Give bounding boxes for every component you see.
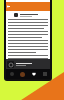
button[interactable]: Tab 0: [6, 69, 17, 79]
button[interactable]: Tab 1: [17, 69, 28, 79]
button[interactable]: Tab 3: [39, 69, 50, 79]
button[interactable]: Tab 2: [28, 69, 39, 79]
button[interactable]: Back: [6, 2, 50, 11]
other: Back: [7, 5, 10, 8]
